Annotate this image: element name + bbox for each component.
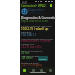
staticText: Signal strength (21, 54, 39, 57)
staticText: Online (39, 57, 47, 60)
staticText: Firmware build (21, 61, 39, 64)
button[interactable] (20, 60, 55, 65)
button[interactable] (20, 36, 55, 41)
staticText: Gateway (21, 30, 32, 33)
staticText: Connected • WPA2 (21, 4, 46, 8)
staticText: 22 ms (21, 51, 30, 55)
staticText: Round trip latency (21, 49, 43, 52)
staticText: Diagnostics (28, 8, 45, 12)
staticText: Last handshake result code (21, 37, 54, 40)
staticText: Tap a row to re-scan (21, 19, 49, 23)
staticText: 192.168.1.1 (21, 33, 37, 37)
button[interactable] (20, 7, 55, 15)
staticText: timeout after 3 retries (21, 39, 51, 43)
staticText: 14.2% over 60s (21, 45, 42, 49)
staticText: Status (37, 54, 45, 57)
staticText: Diagnostics & Connections (21, 16, 56, 20)
button[interactable] (20, 54, 55, 59)
staticText: session log (28, 11, 43, 15)
button[interactable] (20, 4, 55, 7)
button[interactable] (20, 24, 55, 29)
staticText: Packet loss (21, 42, 34, 45)
staticText: 2.4.1-rc3 legacy (21, 63, 43, 67)
button[interactable]: Home (21, 67, 28, 73)
button[interactable] (20, 30, 55, 35)
other: Network status (21, 8, 28, 15)
button[interactable]: Settings (47, 67, 54, 73)
button[interactable] (20, 48, 55, 53)
button[interactable]: Logs (38, 67, 45, 73)
staticText: Current network interface (21, 24, 52, 27)
button[interactable]: Devices (30, 67, 37, 73)
staticText: 9:41 (22, 1, 28, 5)
button[interactable] (20, 42, 55, 47)
staticText: -48 dBm (21, 56, 33, 60)
button[interactable]: Online (38, 56, 48, 61)
staticText: 10.0.2.15 / wlan0 up (21, 27, 49, 31)
